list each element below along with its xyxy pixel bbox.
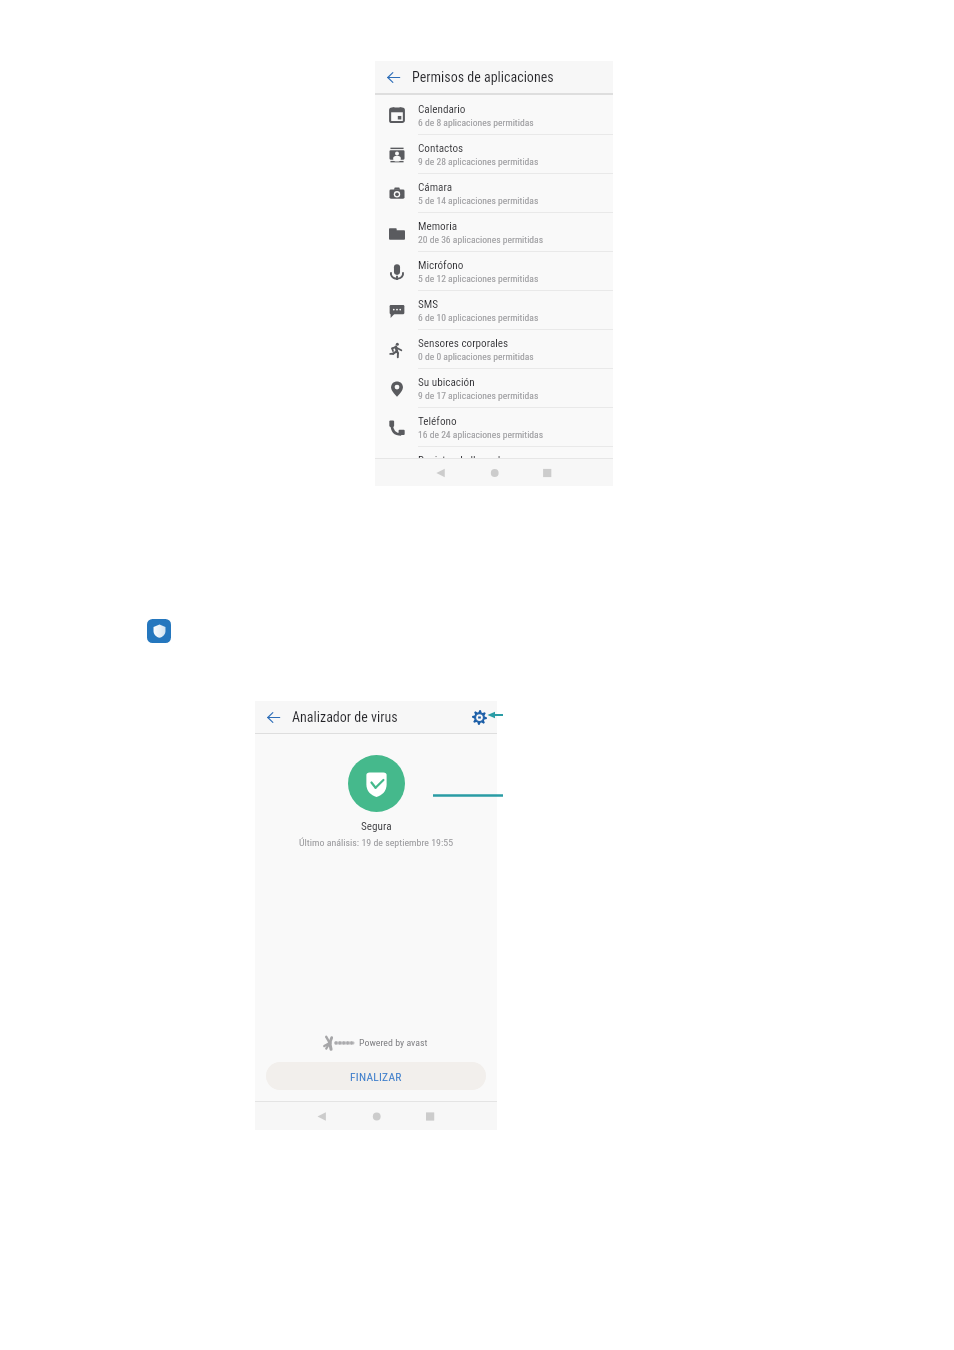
button[interactable]: FINALIZAR (266, 1062, 486, 1090)
staticText: FINALIZAR (350, 1070, 402, 1083)
staticText: Analizador de virus (292, 709, 398, 725)
staticText: 6 de 8 aplicaciones permitidas (418, 117, 534, 128)
staticText: 9 de 28 aplicaciones permitidas (418, 156, 539, 167)
staticText: Permisos de aplicaciones (412, 69, 554, 85)
button[interactable]: Back (375, 61, 412, 93)
staticText: Contactos (418, 142, 464, 155)
staticText: Teléfono (418, 415, 457, 428)
staticText: SMS (418, 298, 439, 311)
staticText: Registro de llamadas (418, 454, 511, 458)
staticText: 6 de 10 aplicaciones permitidas (418, 312, 539, 323)
staticText: Memoria (418, 220, 458, 233)
staticText: 20 de 36 aplicaciones permitidas (418, 234, 544, 245)
button[interactable]: SMS (375, 291, 613, 330)
staticText: 5 de 12 aplicaciones permitidas (418, 273, 539, 284)
staticText: 16 de 24 aplicaciones permitidas (418, 429, 544, 440)
staticText: Su ubicación (418, 376, 475, 389)
button[interactable]: Cámara (375, 174, 613, 213)
staticText: Cámara (418, 181, 453, 194)
button[interactable]: Su ubicación (375, 369, 613, 408)
button[interactable]: Sensores corporales (375, 330, 613, 369)
button[interactable]: Back (255, 701, 292, 733)
button[interactable]: Calendario (375, 95, 613, 135)
staticText: 5 de 14 aplicaciones permitidas (418, 195, 539, 206)
staticText: Sensores corporales (418, 337, 509, 350)
button[interactable]: Settings (461, 701, 497, 733)
staticText: Powered by avast (359, 1037, 428, 1049)
staticText: 0 de 0 aplicaciones permitidas (418, 351, 534, 362)
button[interactable]: Contactos (375, 135, 613, 174)
button[interactable]: Registro de llamadas (375, 447, 613, 458)
button[interactable]: Micrófono (375, 252, 613, 291)
staticText: 9 de 17 aplicaciones permitidas (418, 390, 539, 401)
staticText: Micrófono (418, 259, 464, 272)
staticText: Segura (361, 820, 392, 833)
staticText: Calendario (418, 103, 466, 116)
button[interactable]: Teléfono (375, 408, 613, 447)
button[interactable]: Memoria (375, 213, 613, 252)
staticText: Último análisis: 19 de septiembre 19:55 (299, 837, 454, 849)
